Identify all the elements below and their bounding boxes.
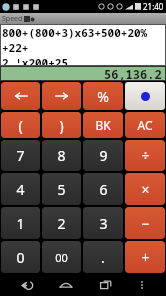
staticText: . [101, 248, 105, 267]
staticText: BK [95, 117, 111, 133]
staticText: 6 [99, 180, 108, 199]
staticText: ( [18, 116, 23, 135]
button[interactable]: % [83, 82, 123, 110]
button[interactable]: Memory indicator [125, 82, 165, 110]
staticText: AC [137, 117, 153, 133]
button[interactable]: BK [83, 112, 123, 138]
staticText: 800+(800+3)x63+500+20%+22+ [2, 25, 164, 55]
button[interactable]: AC [125, 112, 165, 138]
staticText: 2 ¦x200+25 [2, 55, 68, 65]
staticText: 7 [16, 146, 25, 165]
button[interactable]: ( [1, 112, 40, 138]
button[interactable]: ) [42, 112, 81, 138]
button[interactable]: 0 [1, 241, 40, 273]
button[interactable]: × [125, 173, 165, 205]
staticText: 9 [99, 146, 108, 165]
staticText: % [97, 87, 109, 106]
button[interactable]: Back [15, 274, 39, 296]
staticText: 8 [57, 146, 66, 165]
button[interactable]: 5 [42, 173, 81, 205]
button[interactable]: . [83, 241, 123, 273]
button[interactable]: 9 [83, 140, 123, 171]
staticText: 21:40 [143, 1, 164, 12]
staticText: 0 [16, 248, 25, 267]
staticText: 56,136.2 [104, 66, 162, 81]
button[interactable]: Cursor left [1, 82, 40, 110]
staticText: Speed [2, 14, 23, 24]
button[interactable]: Cursor right [42, 82, 81, 110]
button[interactable]: 6 [83, 173, 123, 205]
button[interactable]: 1 [1, 207, 40, 239]
button[interactable]: ÷ [125, 140, 165, 171]
button[interactable]: Home [54, 274, 78, 296]
button[interactable]: 3 [83, 207, 123, 239]
button[interactable]: 4 [1, 173, 40, 205]
staticText: 1 [16, 214, 25, 233]
staticText: 5 [57, 180, 66, 199]
button[interactable]: − [125, 207, 165, 239]
staticText: × [141, 180, 150, 199]
staticText: 4 [16, 180, 25, 199]
button[interactable]: 7 [1, 140, 40, 171]
staticText: 00 [55, 250, 68, 265]
staticText: 2 [57, 214, 66, 233]
staticText: + [141, 248, 150, 267]
staticText: − [141, 214, 150, 233]
button[interactable]: Recent apps [94, 274, 118, 296]
staticText: ÷ [141, 146, 150, 165]
button[interactable]: More options [133, 276, 151, 294]
button[interactable]: 2 [42, 207, 81, 239]
button[interactable]: + [125, 241, 165, 273]
button[interactable]: 00 [42, 241, 81, 273]
button[interactable]: 8 [42, 140, 81, 171]
staticText: 3 [99, 214, 108, 233]
staticText: ) [59, 116, 64, 135]
